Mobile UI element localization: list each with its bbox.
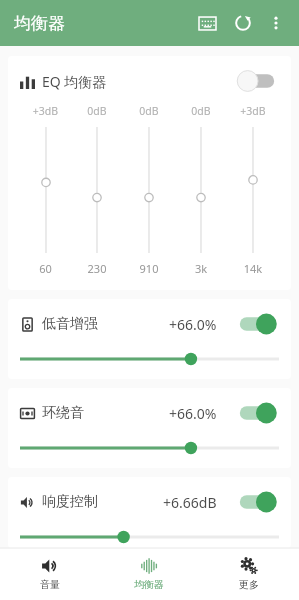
staticText: +66.0%: [169, 315, 217, 334]
button[interactable]: More options: [261, 8, 291, 38]
button[interactable]: 音量: [0, 548, 99, 600]
staticText: 910: [123, 261, 175, 276]
staticText: 均衡器: [134, 578, 164, 591]
button[interactable]: 更多: [199, 548, 299, 600]
staticText: +3dB: [20, 104, 71, 118]
staticText: 音量: [40, 578, 60, 591]
staticText: 0dB: [123, 104, 175, 118]
button[interactable]: Disabled: [235, 68, 279, 94]
staticText: 0dB: [175, 104, 227, 118]
staticText: 响度控制: [42, 493, 98, 511]
staticText: 低音增强: [42, 315, 98, 333]
staticText: +66.0%: [169, 404, 217, 423]
button[interactable]: Keyboard: [189, 5, 225, 41]
button[interactable]: 环绕音 level: [20, 440, 279, 456]
staticText: 环绕音: [42, 404, 84, 422]
button[interactable]: 响度控制 level: [20, 529, 279, 545]
button[interactable]: Band slider: [175, 127, 227, 253]
button[interactable]: 均衡器: [99, 548, 199, 600]
staticText: 0dB: [71, 104, 123, 118]
button[interactable]: Band slider: [123, 127, 175, 253]
button[interactable]: Refresh: [225, 5, 261, 41]
staticText: EQ 均衡器: [42, 72, 107, 91]
button[interactable]: Enabled: [235, 489, 279, 515]
button[interactable]: Band slider: [20, 127, 71, 253]
staticText: 均衡器: [14, 13, 65, 34]
staticText: 14k: [227, 261, 279, 276]
button[interactable]: Enabled: [235, 311, 279, 337]
staticText: +3dB: [227, 104, 279, 118]
button[interactable]: Band slider: [71, 127, 123, 253]
staticText: 230: [71, 261, 123, 276]
staticText: 60: [20, 261, 71, 276]
button[interactable]: Enabled: [235, 400, 279, 426]
staticText: +6.66dB: [163, 493, 217, 512]
staticText: 更多: [239, 578, 259, 591]
button[interactable]: 低音增强 level: [20, 351, 279, 367]
staticText: 3k: [175, 261, 227, 276]
button[interactable]: Band slider: [227, 127, 279, 253]
